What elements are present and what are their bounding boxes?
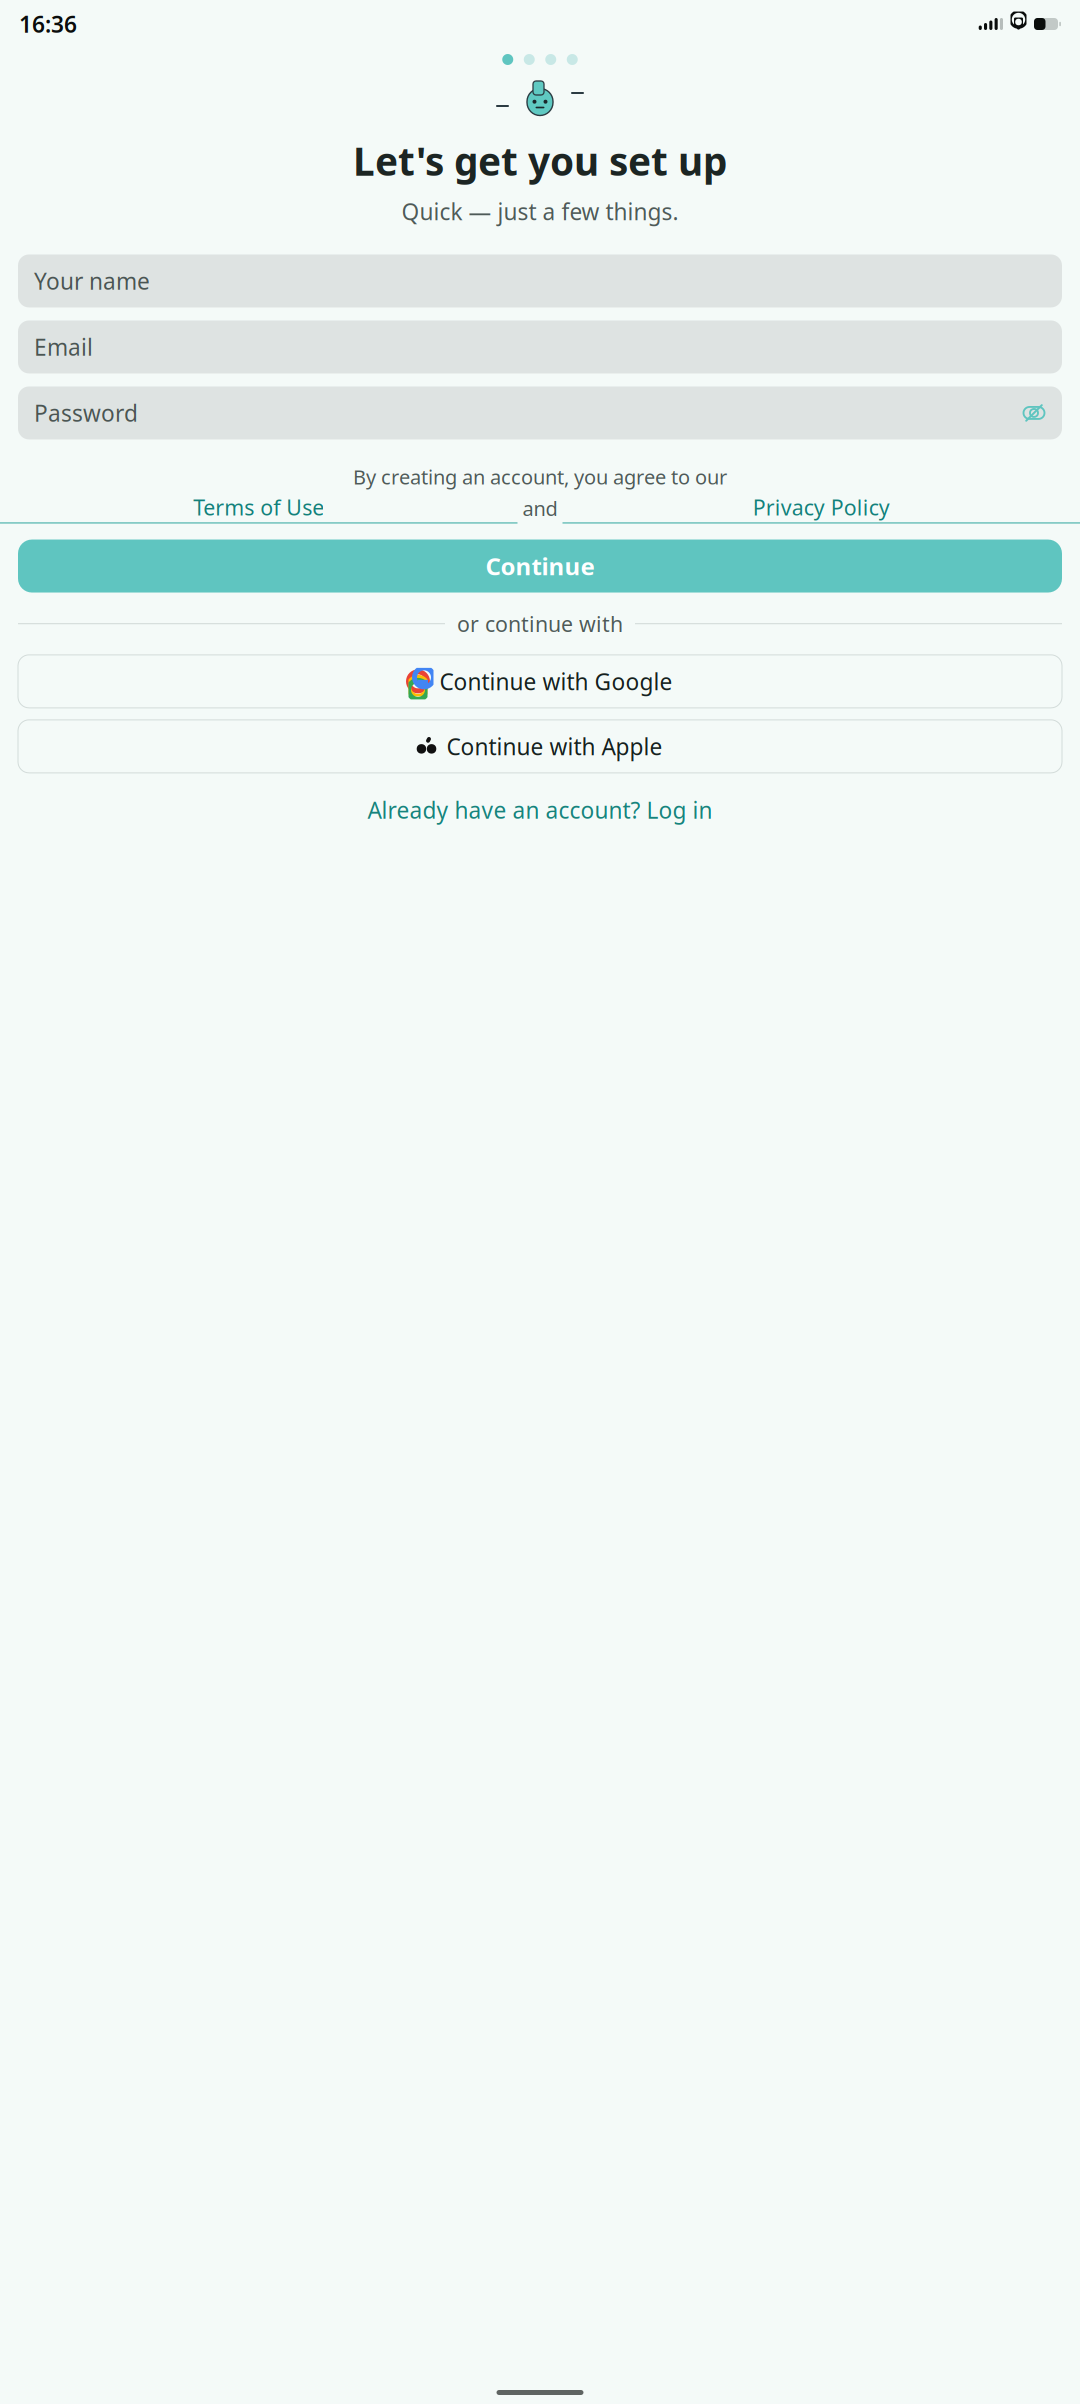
staticText: 16:36 — [19, 9, 77, 39]
staticText: Privacy Policy — [753, 493, 890, 521]
staticText: Quick — just a few things. — [401, 196, 678, 226]
button[interactable]: Terms of Use — [0, 493, 517, 523]
staticText: Email — [34, 332, 93, 362]
staticText: Terms of Use — [193, 493, 324, 521]
button[interactable]: Email — [18, 320, 1062, 373]
button[interactable]: Already have an account? Log in — [18, 793, 1062, 827]
button[interactable]: Privacy Policy — [562, 493, 1080, 523]
staticText: Continue — [485, 550, 594, 582]
staticText: Your name — [34, 266, 150, 296]
staticText: or continue with — [457, 609, 623, 638]
staticText: Let's get you set up — [353, 135, 727, 186]
button[interactable]: Continue with Apple — [18, 720, 1062, 773]
button[interactable]: Password — [18, 386, 1062, 439]
button[interactable]: Your name — [18, 254, 1062, 307]
staticText: Continue with Apple — [446, 731, 662, 761]
staticText: Continue with Google — [439, 666, 672, 696]
button[interactable]: Continue with Google — [18, 655, 1062, 708]
staticText: Already have an account? Log in — [367, 795, 712, 825]
staticText: and — [517, 495, 562, 522]
staticText: By creating an account, you agree to our — [353, 463, 727, 490]
button[interactable]: Continue — [18, 539, 1062, 592]
staticText: Password — [34, 398, 138, 428]
